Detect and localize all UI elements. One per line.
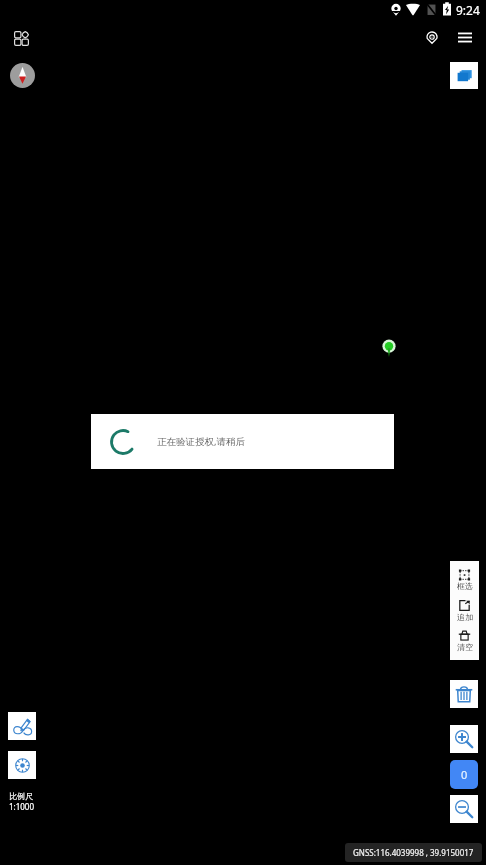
button[interactable]: 框选 xyxy=(450,569,479,591)
staticText: 9:24 xyxy=(456,2,480,18)
button[interactable]: Zoom out xyxy=(450,795,478,823)
button[interactable]: Compass xyxy=(10,63,35,88)
staticText: 1:1000 xyxy=(9,801,35,812)
staticText: GNSS:116.4039998 , 39.9150017 xyxy=(353,847,474,858)
staticText: 比例尺 xyxy=(9,791,33,801)
button[interactable]: 清空 xyxy=(450,629,479,652)
staticText: 框选 xyxy=(457,581,473,591)
button[interactable]: Layers xyxy=(450,62,478,89)
button[interactable]: Apps xyxy=(7,24,36,53)
button[interactable]: Menu xyxy=(451,24,478,51)
button[interactable]: 追加 xyxy=(450,599,479,622)
button[interactable]: Draw xyxy=(8,712,36,740)
staticText: 0 xyxy=(461,767,468,782)
staticText: 追加 xyxy=(457,612,473,622)
button[interactable]: Delete xyxy=(450,680,478,708)
button[interactable]: Map xyxy=(0,0,486,865)
staticText: 清空 xyxy=(457,642,473,652)
button[interactable]: Zoom in xyxy=(450,725,478,753)
button[interactable]: Location xyxy=(418,24,445,51)
staticText: 正在验证授权,请稍后 xyxy=(157,435,246,448)
button[interactable]: My location xyxy=(8,751,36,779)
button[interactable]: 0 xyxy=(450,760,478,789)
